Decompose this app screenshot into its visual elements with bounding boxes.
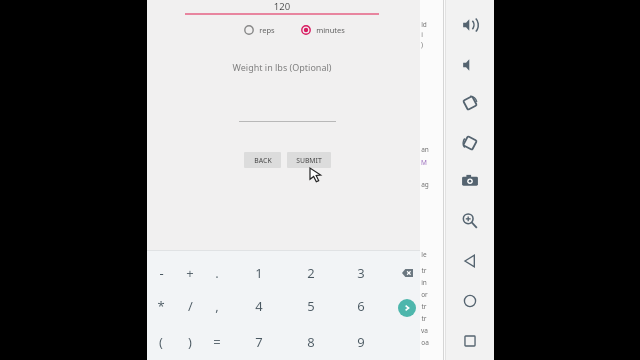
button[interactable]: Enter: [395, 296, 419, 320]
staticText: 120: [187, 0, 377, 13]
staticText: ,: [215, 297, 219, 315]
staticText: le: [421, 250, 427, 259]
button[interactable]: ): [178, 332, 202, 352]
button[interactable]: *: [149, 296, 173, 316]
staticText: 5: [307, 297, 315, 315]
staticText: *: [157, 297, 165, 315]
button[interactable]: 3: [349, 263, 373, 283]
button[interactable]: 7: [247, 332, 271, 352]
button[interactable]: 6: [349, 296, 373, 316]
button[interactable]: /: [178, 296, 202, 316]
staticText: ): [421, 40, 423, 49]
staticText: in: [421, 278, 427, 287]
button[interactable]: Rotate left: [457, 90, 483, 116]
button[interactable]: reps: [242, 23, 277, 37]
staticText: Weight in lbs (Optional): [187, 61, 377, 73]
button[interactable]: 9: [349, 332, 373, 352]
staticText: ld: [421, 20, 427, 29]
staticText: 6: [357, 297, 365, 315]
staticText: oa: [421, 338, 429, 347]
button[interactable]: (: [149, 332, 173, 352]
staticText: BACK: [254, 156, 272, 165]
button[interactable]: 1: [247, 263, 271, 283]
button[interactable]: ,: [205, 296, 229, 316]
button[interactable]: SUBMIT: [287, 152, 331, 168]
staticText: (: [159, 333, 163, 351]
staticText: -: [159, 264, 164, 282]
staticText: .: [215, 264, 219, 282]
button[interactable]: +: [178, 263, 202, 283]
staticText: M: [421, 158, 427, 167]
button[interactable]: 4: [247, 296, 271, 316]
staticText: 8: [307, 333, 315, 351]
button[interactable]: Rotate right: [457, 130, 483, 156]
button[interactable]: =: [205, 332, 229, 352]
button[interactable]: 2: [299, 263, 323, 283]
staticText: an: [421, 145, 429, 154]
staticText: minutes: [316, 25, 345, 35]
staticText: tr: [421, 314, 427, 323]
staticText: 4: [255, 297, 263, 315]
staticText: va: [421, 326, 428, 335]
staticText: tr: [421, 266, 427, 275]
button[interactable]: minutes: [299, 23, 347, 37]
button[interactable]: Backspace: [395, 263, 419, 283]
staticText: ): [188, 333, 192, 351]
button[interactable]: Volume up: [457, 12, 483, 38]
staticText: 3: [357, 264, 365, 282]
button[interactable]: 8: [299, 332, 323, 352]
staticText: +: [186, 264, 194, 282]
staticText: =: [213, 333, 221, 351]
staticText: 7: [255, 333, 263, 351]
button[interactable]: Zoom: [457, 208, 483, 234]
button[interactable]: Overview: [457, 328, 483, 354]
button[interactable]: Back: [457, 248, 483, 274]
staticText: i: [421, 30, 423, 39]
staticText: 9: [357, 333, 365, 351]
staticText: reps: [259, 25, 275, 35]
button[interactable]: BACK: [244, 152, 281, 168]
button[interactable]: .: [205, 263, 229, 283]
staticText: ag: [421, 180, 429, 189]
staticText: or: [421, 290, 428, 299]
button[interactable]: Home: [457, 288, 483, 314]
staticText: /: [188, 297, 193, 315]
staticText: SUBMIT: [296, 156, 322, 165]
button[interactable]: 5: [299, 296, 323, 316]
staticText: 1: [255, 264, 263, 282]
button[interactable]: Screenshot: [457, 168, 483, 194]
button[interactable]: -: [149, 263, 173, 283]
staticText: 2: [307, 264, 315, 282]
staticText: tr: [421, 302, 427, 311]
button[interactable]: Volume down: [457, 52, 483, 78]
